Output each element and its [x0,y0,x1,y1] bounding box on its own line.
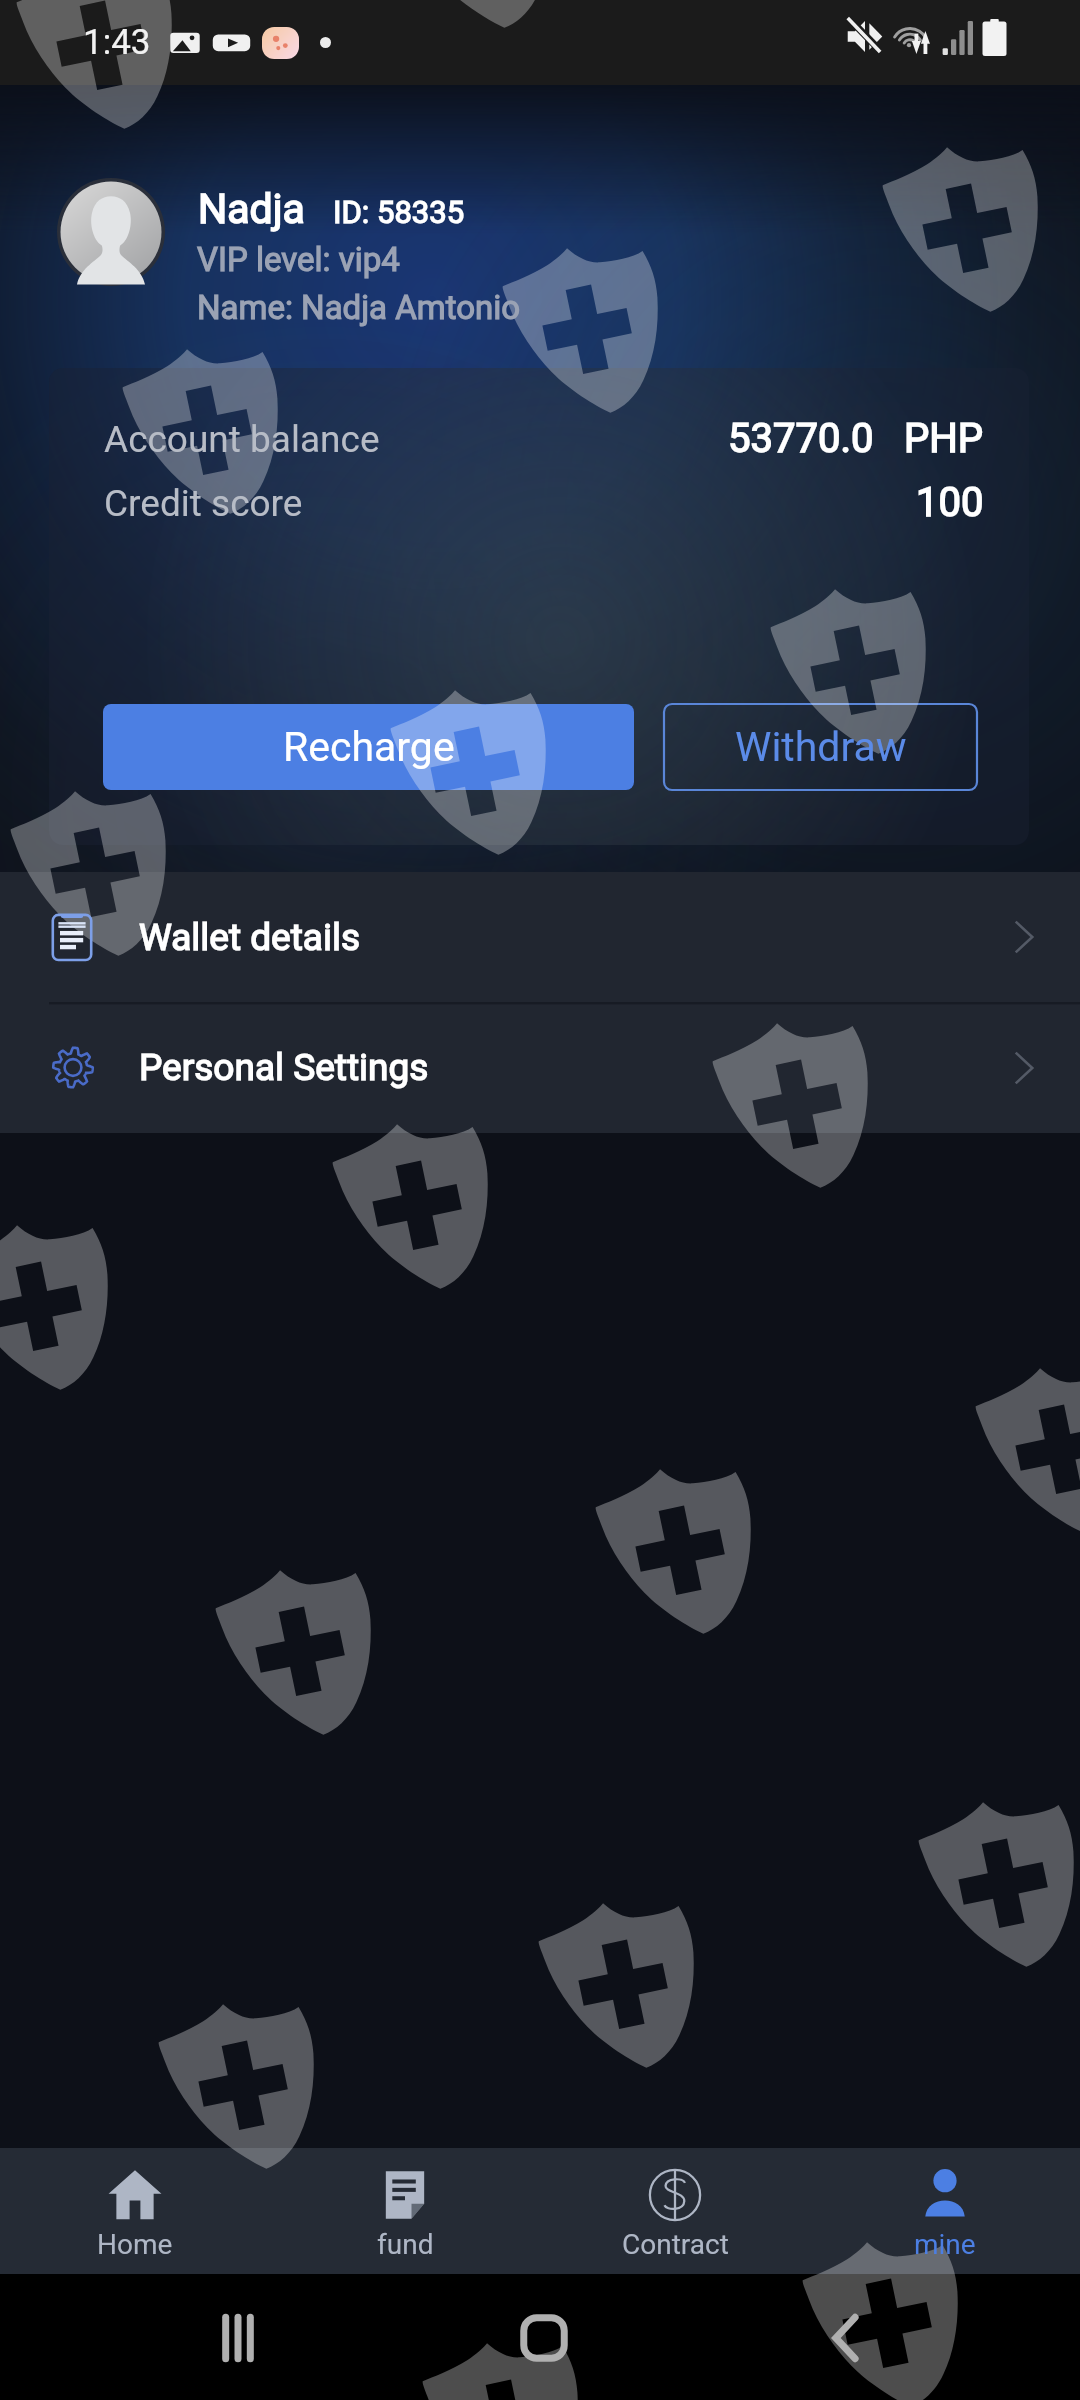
staticText: Recharge [283,723,455,771]
button[interactable]: Contract [540,2148,810,2274]
staticText: Account balance [104,418,380,461]
button[interactable]: Wallet details [0,872,1080,1002]
staticText: Credit score [104,482,303,525]
button[interactable]: Recent apps [194,2303,282,2373]
button[interactable]: Recharge [103,704,634,790]
button[interactable]: Home [0,2148,270,2274]
staticText: Nadja [198,185,305,233]
staticText: Wallet details [139,916,361,959]
staticText: ID: 58335 [333,194,465,230]
staticText: Personal Settings [139,1046,429,1089]
staticText: Contract [622,2228,729,2261]
staticText: mine [914,2228,976,2261]
staticText: Withdraw [735,723,907,771]
button[interactable]: fund [270,2148,540,2274]
button[interactable]: mine [810,2148,1080,2274]
staticText: PHP [904,415,984,462]
button[interactable]: Back [801,2303,889,2373]
button[interactable]: Home [500,2303,588,2373]
button[interactable]: Personal Settings [0,1002,1080,1133]
staticText: 53770.0 [728,415,874,462]
staticText: 1:43 [83,22,151,63]
staticText: Home [97,2228,173,2261]
staticText: fund [377,2228,434,2261]
button[interactable]: Withdraw [664,704,977,790]
staticText: 100 [916,479,984,526]
staticText: Name: Nadja Amtonio [197,288,521,327]
staticText: VIP level: vip4 [197,240,400,279]
